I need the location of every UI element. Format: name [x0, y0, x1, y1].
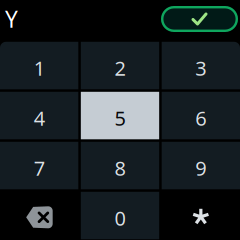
- staticText: 6: [195, 105, 206, 131]
- button[interactable]: 2: [81, 42, 159, 89]
- button[interactable]: 1: [0, 42, 78, 89]
- button[interactable]: 5: [81, 92, 159, 139]
- staticText: 7: [34, 155, 45, 181]
- button[interactable]: 9: [162, 142, 240, 189]
- staticText: 1: [34, 55, 45, 81]
- button[interactable]: 7: [0, 142, 78, 189]
- staticText: 3: [195, 55, 206, 81]
- staticText: 8: [114, 155, 125, 181]
- button[interactable]: 3: [162, 42, 240, 89]
- staticText: 9: [195, 155, 206, 181]
- button[interactable]: 8: [81, 142, 159, 189]
- button[interactable]: Delete: [0, 192, 78, 239]
- button[interactable]: [162, 192, 240, 239]
- button[interactable]: 6: [162, 92, 240, 139]
- staticText: 0: [114, 205, 125, 231]
- staticText: 5: [114, 105, 125, 131]
- button[interactable]: Confirm: [161, 6, 238, 32]
- button[interactable]: 0: [81, 192, 159, 239]
- staticText: 2: [114, 55, 125, 81]
- staticText: Y: [5, 4, 18, 34]
- staticText: 4: [34, 105, 45, 131]
- button[interactable]: 4: [0, 92, 78, 139]
